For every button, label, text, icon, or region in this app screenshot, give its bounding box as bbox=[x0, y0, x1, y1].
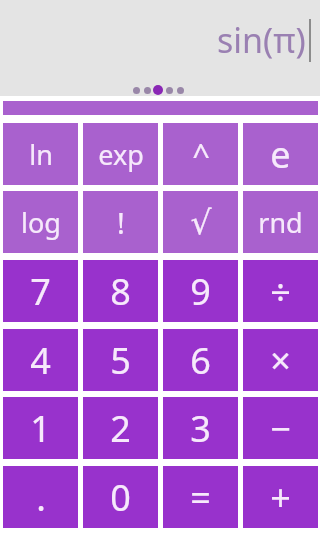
button[interactable]: 6 bbox=[163, 329, 238, 391]
staticText: 9 bbox=[190, 267, 211, 316]
staticText: + bbox=[270, 473, 291, 522]
button[interactable]: . bbox=[3, 466, 78, 528]
staticText: 3 bbox=[190, 404, 211, 453]
staticText: 6 bbox=[190, 336, 211, 385]
staticText: 1 bbox=[30, 404, 51, 453]
button[interactable]: ln bbox=[3, 123, 78, 185]
staticText: log bbox=[21, 204, 61, 241]
button[interactable]: √ bbox=[163, 191, 238, 253]
button[interactable]: log bbox=[3, 191, 78, 253]
button[interactable]: + bbox=[243, 466, 318, 528]
staticText: exp bbox=[98, 136, 144, 173]
staticText: 4 bbox=[30, 336, 51, 385]
button[interactable]: 3 bbox=[163, 397, 238, 459]
button[interactable]: Expression display bbox=[0, 0, 320, 96]
button[interactable]: × bbox=[243, 329, 318, 391]
button[interactable]: e bbox=[243, 123, 318, 185]
staticText: √ bbox=[190, 203, 212, 241]
staticText: . bbox=[36, 473, 46, 522]
staticText: = bbox=[190, 473, 211, 522]
staticText: × bbox=[270, 336, 291, 385]
button[interactable]: 1 bbox=[3, 397, 78, 459]
staticText: ÷ bbox=[270, 267, 291, 316]
button[interactable]: 4 bbox=[3, 329, 78, 391]
staticText: 2 bbox=[110, 404, 131, 453]
button[interactable]: 7 bbox=[3, 260, 78, 322]
button[interactable]: 8 bbox=[83, 260, 158, 322]
button[interactable]: ^ bbox=[163, 123, 238, 185]
staticText: ln bbox=[29, 136, 53, 173]
staticText: ^ bbox=[192, 133, 210, 175]
staticText: 7 bbox=[30, 267, 51, 316]
staticText: 8 bbox=[110, 267, 131, 316]
staticText: ! bbox=[117, 203, 125, 242]
button[interactable]: 0 bbox=[83, 466, 158, 528]
button[interactable]: 2 bbox=[83, 397, 158, 459]
staticText: sin(π) bbox=[217, 17, 306, 63]
button[interactable]: exp bbox=[83, 123, 158, 185]
button[interactable]: − bbox=[243, 397, 318, 459]
button[interactable]: = bbox=[163, 466, 238, 528]
button[interactable]: 9 bbox=[163, 260, 238, 322]
button[interactable]: ! bbox=[83, 191, 158, 253]
staticText: rnd bbox=[258, 204, 303, 241]
button[interactable]: ÷ bbox=[243, 260, 318, 322]
staticText: e bbox=[270, 130, 291, 179]
staticText: 5 bbox=[110, 336, 131, 385]
button[interactable]: 5 bbox=[83, 329, 158, 391]
staticText: 0 bbox=[110, 473, 131, 522]
staticText: − bbox=[270, 404, 291, 453]
button[interactable]: rnd bbox=[243, 191, 318, 253]
